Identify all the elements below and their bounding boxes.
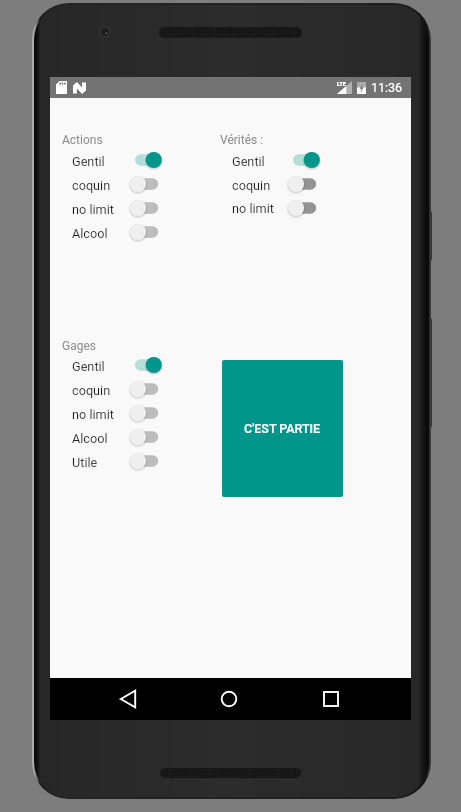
button[interactable]: Alcool <box>72 426 164 450</box>
button[interactable]: no limit <box>72 197 164 221</box>
button[interactable]: Alcool <box>72 221 164 245</box>
staticText: Alcool <box>72 226 108 241</box>
staticText: Alcool <box>72 431 108 446</box>
button[interactable]: coquin <box>72 378 164 402</box>
staticText: Vérités : <box>220 133 264 147</box>
button[interactable]: coquin <box>232 173 322 197</box>
button[interactable]: Gentil <box>232 149 322 173</box>
staticText: Gentil <box>72 154 105 169</box>
staticText: Gentil <box>72 359 105 374</box>
staticText: 11:36 <box>371 80 403 95</box>
button[interactable]: Recent apps <box>310 678 352 720</box>
staticText: C'EST PARTIE <box>244 421 321 436</box>
staticText: LTE <box>337 81 346 87</box>
staticText: Gages <box>62 339 96 353</box>
button[interactable]: Home <box>208 678 250 720</box>
button[interactable]: Gentil <box>72 354 164 378</box>
staticText: no limit <box>232 201 274 216</box>
button[interactable]: Back <box>107 678 149 720</box>
staticText: no limit <box>72 202 114 217</box>
staticText: Utile <box>72 455 98 470</box>
button[interactable]: coquin <box>72 173 164 197</box>
button[interactable]: Utile <box>72 450 164 474</box>
staticText: Actions <box>62 133 103 147</box>
staticText: coquin <box>72 178 111 193</box>
button[interactable]: Gentil <box>72 149 164 173</box>
button[interactable]: no limit <box>72 402 164 426</box>
staticText: coquin <box>232 178 271 193</box>
button[interactable]: no limit <box>232 196 322 220</box>
staticText: coquin <box>72 383 111 398</box>
button[interactable]: C'EST PARTIE <box>222 360 343 497</box>
staticText: Gentil <box>232 154 265 169</box>
staticText: no limit <box>72 407 114 422</box>
